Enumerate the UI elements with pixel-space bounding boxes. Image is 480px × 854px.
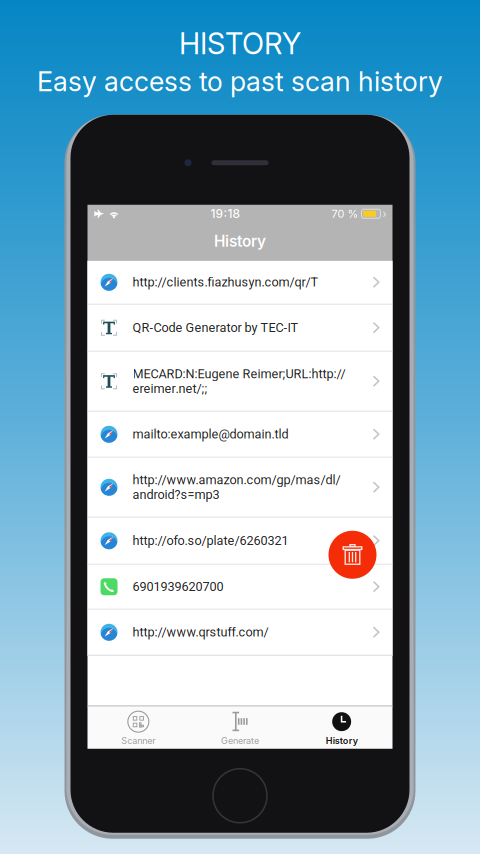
button[interactable]: Scanner [87, 707, 189, 749]
button[interactable]: Generate [189, 707, 291, 749]
staticText: › [382, 207, 386, 220]
button[interactable]: Delete history [328, 531, 376, 579]
button[interactable]: http://clients.fiazhusyn.com/qr/T [87, 261, 392, 305]
staticText: Easy access to past scan history [37, 65, 443, 98]
staticText: mailto:example@domain.tld [132, 427, 288, 442]
staticText: http://clients.fiazhusyn.com/qr/T [132, 275, 318, 290]
staticText: QR-Code Generator by TEC-IT [132, 320, 298, 335]
staticText: 19:18 [210, 206, 240, 221]
staticText: Generate [221, 735, 259, 746]
button[interactable]: MECARD:N:Eugene Reimer;URL:http:// ereim… [87, 352, 392, 412]
staticText: 70 % [331, 207, 358, 220]
button[interactable]: http://www.qrstuff.com/ [87, 610, 392, 656]
staticText: http://ofo.so/plate/6260321 [132, 533, 288, 548]
button[interactable]: 6901939620700 [87, 565, 392, 610]
button[interactable]: History [291, 707, 392, 749]
button[interactable]: QR-Code Generator by TEC-IT [87, 305, 392, 352]
button[interactable]: http://www.amazon.com/gp/mas/dl/ android… [87, 458, 392, 518]
staticText: HISTORY [179, 26, 301, 61]
staticText: 6901939620700 [132, 579, 223, 594]
staticText: Scanner [121, 735, 155, 746]
staticText: History [214, 232, 266, 251]
staticText: MECARD:N:Eugene Reimer;URL:http:// ereim… [132, 366, 345, 396]
button[interactable]: http://ofo.so/plate/6260321 [87, 518, 392, 565]
staticText: History [326, 735, 358, 746]
staticText: http://www.amazon.com/gp/mas/dl/ android… [132, 472, 340, 502]
button[interactable]: mailto:example@domain.tld [87, 412, 392, 458]
staticText: http://www.qrstuff.com/ [132, 625, 268, 640]
